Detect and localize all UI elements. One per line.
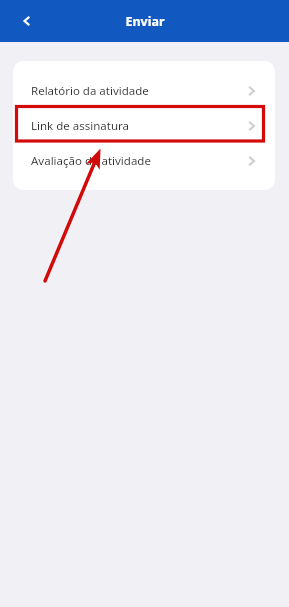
staticText: Link de assinatura	[31, 118, 130, 134]
staticText: Enviar	[125, 13, 165, 30]
staticText: Avaliação da atividade	[31, 153, 151, 169]
button[interactable]: Link de assinatura	[13, 108, 275, 143]
button[interactable]: Voltar	[16, 10, 38, 32]
button[interactable]: Avaliação da atividade	[13, 143, 275, 178]
button[interactable]: Relatório da atividade	[13, 73, 275, 108]
staticText: Relatório da atividade	[31, 83, 149, 99]
